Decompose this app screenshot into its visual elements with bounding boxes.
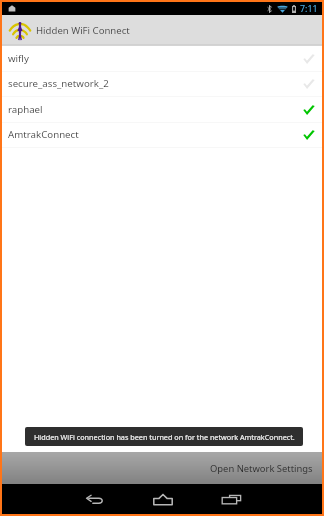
button[interactable]: Back bbox=[60, 484, 128, 514]
staticText: Hidden WiFi Connect bbox=[36, 24, 130, 37]
staticText: AmtrakConnect bbox=[8, 128, 79, 141]
button[interactable]: Recent apps bbox=[197, 484, 265, 514]
staticText: 7:11 bbox=[300, 3, 318, 15]
staticText: Open Network Settings bbox=[210, 462, 313, 475]
button[interactable]: wifly bbox=[2, 46, 322, 72]
staticText: raphael bbox=[8, 103, 43, 116]
button[interactable]: raphael bbox=[2, 97, 322, 123]
button[interactable]: Open Network Settings bbox=[2, 452, 322, 484]
staticText: secure_ass_network_2 bbox=[8, 77, 109, 90]
staticText: Hidden WiFi connection has been turned o… bbox=[34, 432, 295, 442]
button[interactable]: AmtrakConnect bbox=[2, 123, 322, 148]
other: Notification bbox=[8, 5, 16, 12]
button[interactable]: secure_ass_network_2 bbox=[2, 72, 322, 97]
button[interactable]: Home bbox=[128, 484, 197, 514]
staticText: wifly bbox=[8, 52, 29, 65]
